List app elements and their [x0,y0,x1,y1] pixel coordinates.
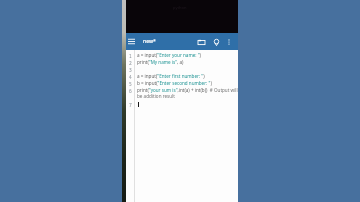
staticText: new* [143,38,156,45]
staticText: print("My name is", a) [137,59,184,65]
button[interactable]: Open file [195,36,207,48]
button[interactable]: a = input("Enter your name: ") [137,52,238,202]
staticText: b = input("Enter second number: ") [137,80,212,86]
staticText: 3 [129,67,132,73]
staticText: 4 [129,74,132,80]
staticText: 2 [129,60,132,66]
staticText: a = input("Enter your name: ") [137,52,201,58]
staticText: 1 [129,53,132,59]
staticText: print("your sum is",int(a) + int(b)) # O… [137,87,238,100]
staticText: python [173,5,187,10]
button[interactable]: Menu [126,36,137,47]
button[interactable]: Location [210,36,222,48]
button[interactable]: More options [224,37,234,47]
staticText: 5 [129,81,132,87]
staticText: a = input("Enter first number: ") [137,73,205,79]
staticText: 7 [129,102,132,108]
staticText: 6 [129,88,132,94]
